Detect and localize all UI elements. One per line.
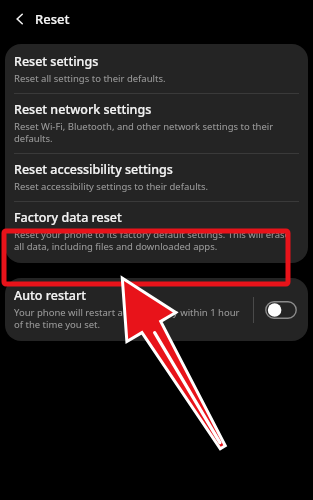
button[interactable]: Factory data reset [5, 202, 308, 261]
staticText: Reset settings [14, 53, 99, 70]
button[interactable]: Reset network settings [5, 94, 308, 153]
staticText: Auto restart [14, 287, 87, 304]
staticText: Reset [35, 10, 70, 28]
staticText: Reset Wi-Fi, Bluetooth, and other networ… [14, 120, 296, 145]
staticText: Reset network settings [14, 101, 152, 118]
button[interactable]: Reset accessibility settings [5, 154, 308, 201]
button[interactable]: Reset settings [5, 46, 308, 93]
button[interactable]: Auto restart [5, 278, 308, 341]
button[interactable]: Back [8, 7, 32, 31]
staticText: Factory data reset [14, 209, 122, 226]
staticText: Your phone will restart automatically wi… [14, 306, 247, 331]
staticText: Reset all settings to their defaults. [14, 72, 166, 85]
button[interactable]: Auto restart toggle [265, 301, 297, 319]
staticText: Reset your phone to its factory default … [14, 228, 296, 253]
staticText: Reset accessibility settings [14, 161, 173, 178]
staticText: Reset accessibility settings to their de… [14, 180, 209, 193]
